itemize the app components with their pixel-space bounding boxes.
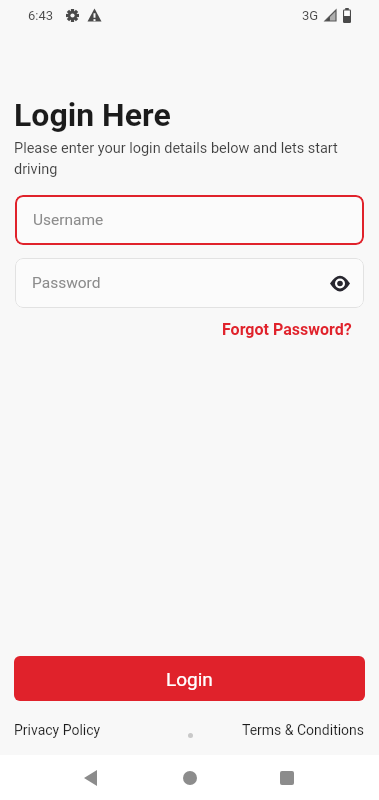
button[interactable]: Privacy Policy <box>14 722 101 738</box>
button[interactable] <box>81 768 100 787</box>
staticText: Login <box>166 668 213 690</box>
staticText: Username <box>33 211 104 229</box>
staticText: Terms & Conditions <box>242 722 365 738</box>
button[interactable] <box>180 768 199 787</box>
staticText: Privacy Policy <box>14 722 101 738</box>
button[interactable]: Username <box>15 195 364 245</box>
staticText: Forgot Password? <box>222 320 352 339</box>
button[interactable]: Forgot Password? <box>222 320 352 339</box>
staticText: 6:43 <box>28 8 54 23</box>
staticText: Login Here <box>14 96 171 134</box>
button[interactable]: Password <box>15 258 364 308</box>
staticText: Password <box>32 274 101 292</box>
button[interactable]: Login <box>14 656 365 701</box>
button[interactable] <box>277 768 296 787</box>
staticText: Please enter your login details below an… <box>14 140 338 177</box>
button[interactable]: Terms & Conditions <box>242 722 365 738</box>
button[interactable] <box>328 271 352 295</box>
staticText: 3G <box>302 8 319 23</box>
